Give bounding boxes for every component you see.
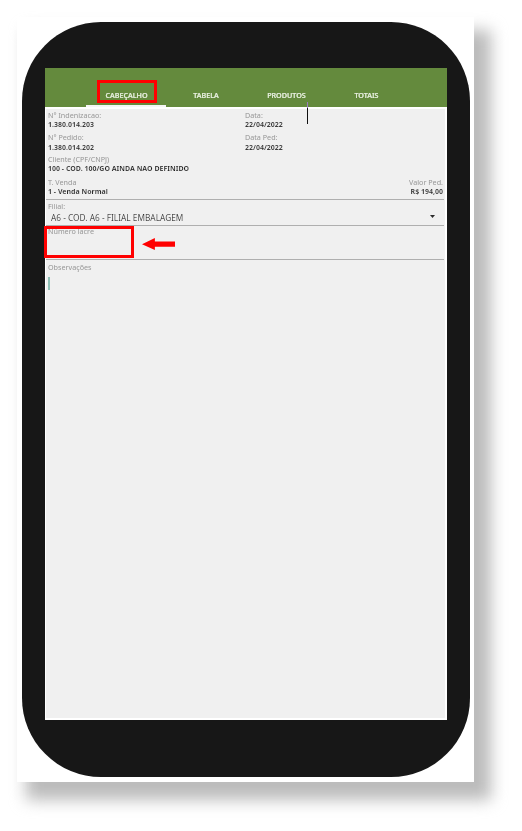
- staticText: CABEÇALHO: [105, 90, 148, 100]
- button[interactable]: PRODUTOS: [246, 68, 326, 107]
- staticText: Data Ped:: [245, 132, 278, 142]
- staticText: R$ 194,00: [46, 187, 443, 197]
- staticText: 22/04/2022: [245, 143, 283, 153]
- button[interactable]: Observações: [46, 260, 445, 305]
- button[interactable]: CABEÇALHO: [86, 68, 166, 107]
- staticText: Filial:: [48, 201, 66, 211]
- staticText: T. Venda: [48, 177, 77, 187]
- staticText: Cliente (CPF/CNPJ): [48, 154, 110, 164]
- staticText: 100 - COD. 100/GO AINDA NAO DEFINIDO: [48, 164, 190, 174]
- staticText: N° Indenizacao:: [48, 110, 102, 120]
- staticText: Data:: [245, 110, 263, 120]
- button[interactable]: Expand filial dropdown: [425, 210, 440, 225]
- staticText: A6 - COD. A6 - FILIAL EMBALAGEM: [51, 212, 184, 223]
- staticText: 1.380.014.202: [48, 143, 94, 153]
- button[interactable]: Número lacre: [46, 226, 445, 259]
- button[interactable]: TOTAIS: [326, 68, 406, 107]
- staticText: 1.380.014.203: [48, 120, 94, 130]
- staticText: PRODUTOS: [267, 90, 306, 100]
- staticText: TOTAIS: [354, 90, 379, 100]
- staticText: Observações: [48, 262, 92, 272]
- staticText: 22/04/2022: [245, 120, 283, 130]
- staticText: Número lacre: [48, 226, 94, 236]
- staticText: 1 - Venda Normal: [48, 187, 108, 197]
- staticText: Valor Ped.: [46, 177, 443, 187]
- button[interactable]: TABELA: [166, 68, 246, 107]
- staticText: TABELA: [193, 90, 219, 100]
- staticText: N° Pedido:: [48, 132, 84, 142]
